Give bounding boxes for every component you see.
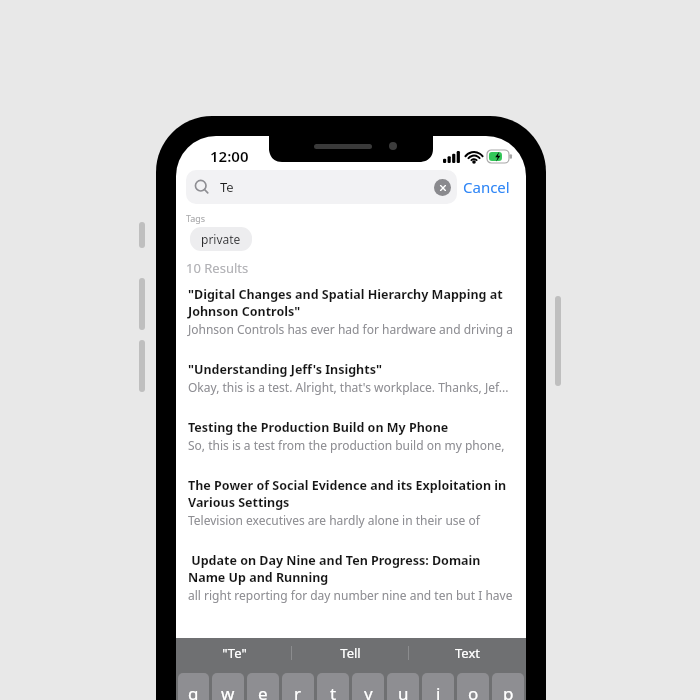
staticText: Text [455,644,480,662]
staticText: Te [220,178,234,196]
staticText: r [294,682,302,700]
button[interactable]: r [282,673,314,700]
staticText: Cancel [463,177,510,197]
staticText: o [468,682,479,700]
button[interactable]: t [317,673,349,700]
button[interactable]: Clear search [434,179,451,196]
button[interactable]: w [212,673,244,700]
staticText: "Understanding Jeff's Insights" [188,361,382,378]
button[interactable]: Tell [292,638,409,668]
button[interactable]: p [492,673,524,700]
staticText: q [188,682,199,700]
staticText: private [201,231,241,247]
staticText: Tags [186,212,206,224]
staticText: Tell [340,644,361,662]
button[interactable]: o [457,673,489,700]
staticText: y [364,682,373,700]
staticText: "Digital Changes and Spatial Hierarchy M… [188,286,515,320]
button[interactable]: "Digital Changes and Spatial Hierarchy M… [176,283,526,340]
button[interactable]: "Te" [176,638,292,668]
button[interactable]: private [190,227,252,251]
button[interactable]: i [422,673,454,700]
button[interactable]: Testing the Production Build on My Phone [176,416,526,456]
staticText: i [436,682,441,700]
staticText: "Te" [222,644,247,662]
staticText: w [221,682,235,700]
button[interactable]: "Understanding Jeff's Insights" [176,358,526,398]
button[interactable]: The Power of Social Evidence and its Exp… [176,474,526,531]
staticText: Johnson Controls has ever had for hardwa… [188,321,515,337]
staticText: t [330,682,337,700]
staticText: So, this is a test from the production b… [188,437,515,453]
staticText: e [258,682,268,700]
staticText: p [503,682,514,700]
staticText: u [398,682,409,700]
staticText: Testing the Production Build on My Phone [188,419,449,436]
staticText: Update on Day Nine and Ten Progress: Dom… [188,552,515,586]
staticText: 12:00 [210,146,249,166]
staticText: Okay, this is a test. Alright, that's wo… [188,379,509,395]
button[interactable]: e [247,673,279,700]
staticText: The Power of Social Evidence and its Exp… [188,477,515,511]
button[interactable]: u [387,673,419,700]
button[interactable]: y [352,673,384,700]
staticText: Television executives are hardly alone i… [188,512,515,528]
button[interactable]: q [178,673,209,700]
button[interactable]: Text [409,638,526,668]
button[interactable]: Cancel [457,173,516,201]
staticText: 10 Results [186,259,249,277]
staticText: all right reporting for day number nine … [188,587,515,603]
button[interactable]: Te [186,170,457,204]
button[interactable]: Update on Day Nine and Ten Progress: Dom… [176,549,526,606]
